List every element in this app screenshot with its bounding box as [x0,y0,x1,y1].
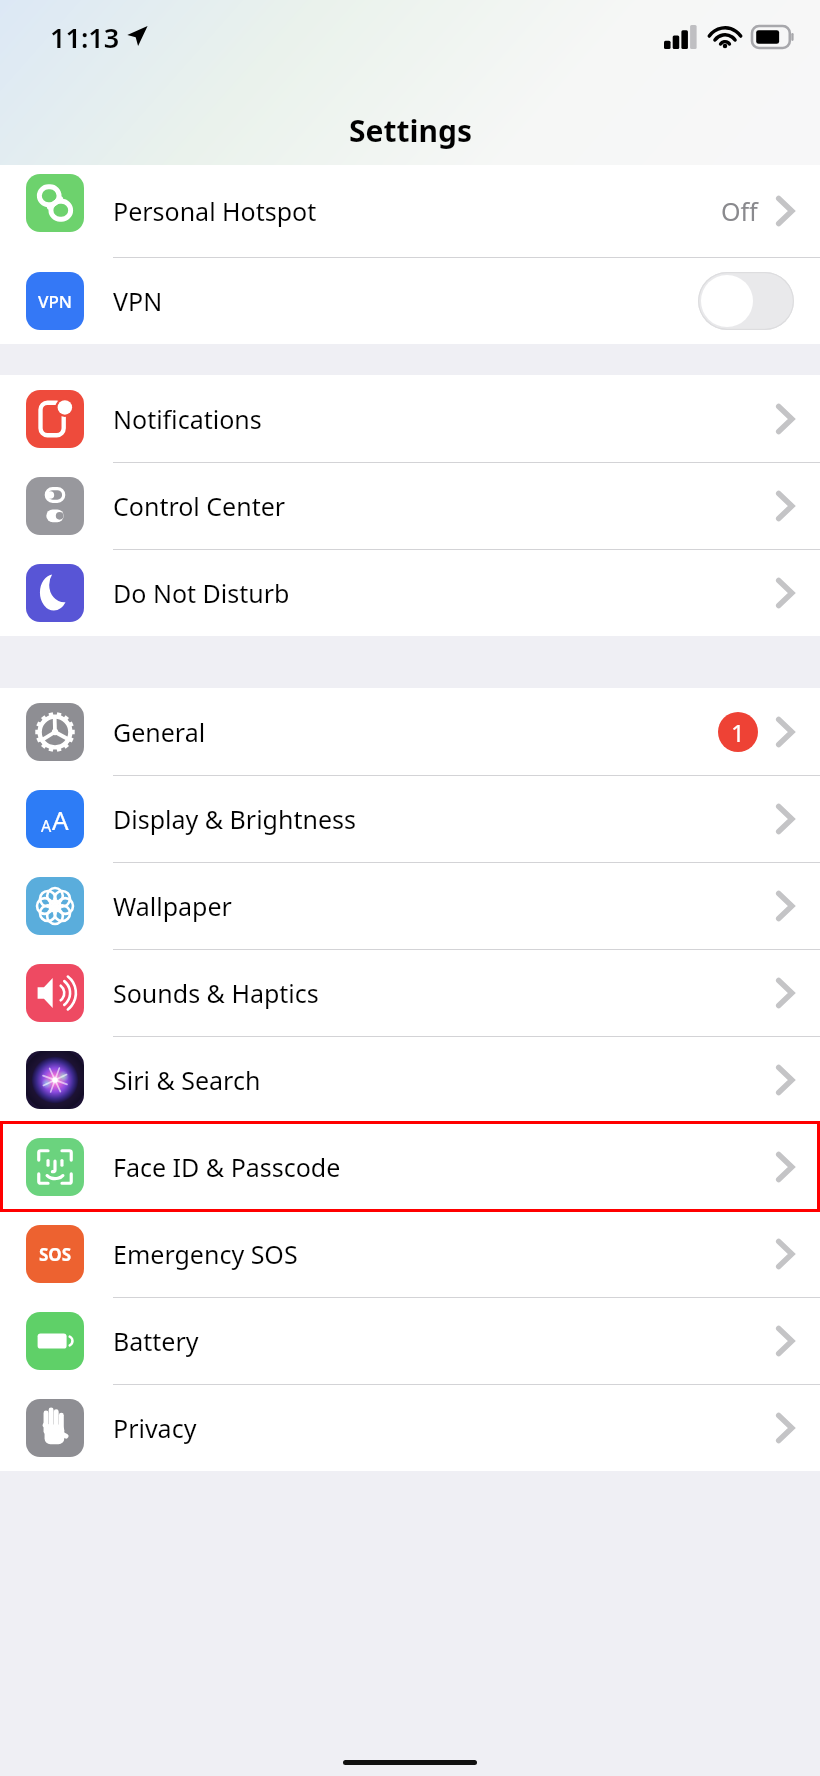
button[interactable]: VPN toggle, off [698,272,794,330]
staticText: Personal Hotspot [113,194,721,228]
staticText: Privacy [113,1411,776,1445]
staticText: General [113,715,718,749]
staticText: Notifications [113,402,776,436]
staticText: VPN [38,290,73,313]
button[interactable]: Control Center [0,462,820,549]
button[interactable]: Face ID & Passcode [0,1123,820,1210]
button[interactable]: Notifications [0,375,820,462]
button[interactable]: Personal Hotspot [0,165,820,257]
staticText: 1 [731,716,745,749]
staticText: Emergency SOS [113,1237,776,1271]
button[interactable]: SOS [0,1210,820,1297]
staticText: SOS [39,1243,72,1266]
staticText: Sounds & Haptics [113,976,776,1010]
staticText: Face ID & Passcode [113,1150,776,1184]
button[interactable]: Wallpaper [0,862,820,949]
staticText: A [41,815,52,837]
button[interactable]: General [0,688,820,775]
staticText: Off [721,194,758,228]
button[interactable]: Battery [0,1297,820,1384]
staticText: Wallpaper [113,889,776,923]
staticText: VPN [113,284,698,318]
staticText: Settings [349,110,472,151]
button[interactable]: Privacy [0,1384,820,1471]
staticText: Control Center [113,489,776,523]
staticText: A [52,802,69,837]
button[interactable]: A [0,775,820,862]
button[interactable]: VPN [0,258,820,344]
staticText: 11:13 [50,19,120,56]
button[interactable]: Siri & Search [0,1036,820,1123]
staticText: Battery [113,1324,776,1358]
staticText: Display & Brightness [113,802,776,836]
staticText: Do Not Disturb [113,576,776,610]
button[interactable]: Sounds & Haptics [0,949,820,1036]
button[interactable]: Do Not Disturb [0,549,820,636]
staticText: Siri & Search [113,1063,776,1097]
